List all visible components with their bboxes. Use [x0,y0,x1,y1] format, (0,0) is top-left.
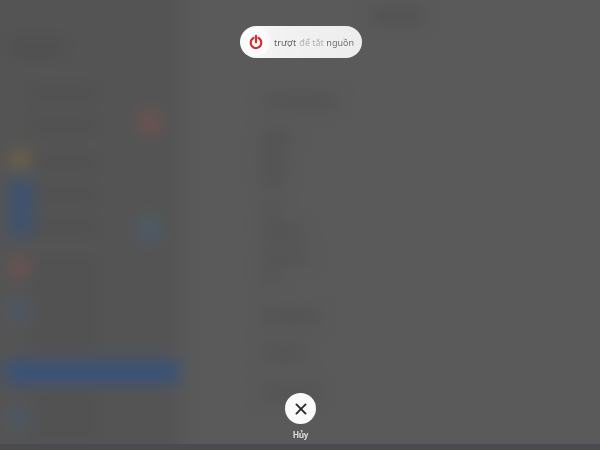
staticText: để tắt [297,36,324,48]
staticText: nguồn [324,36,355,48]
staticText: Hủy [293,429,308,440]
other: Hủy [285,393,316,424]
staticText: trượt [274,36,297,48]
button[interactable]: Trượt để tắt nguồn [240,26,362,58]
button[interactable]: Hủy [277,393,323,440]
